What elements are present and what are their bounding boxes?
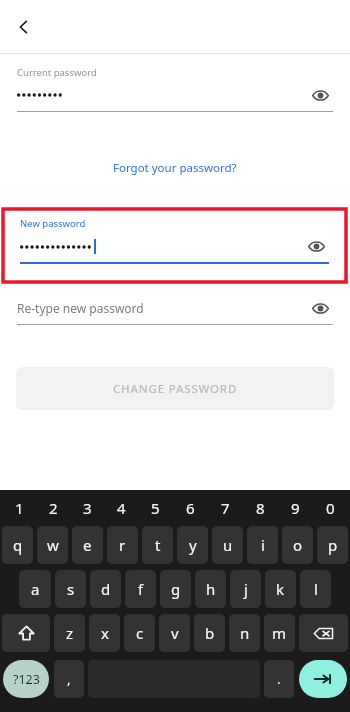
staticText: 1	[15, 498, 24, 518]
button[interactable]: u	[212, 526, 243, 564]
button[interactable]: Show password	[307, 297, 333, 319]
button[interactable]: y	[177, 526, 208, 564]
button[interactable]: c	[124, 614, 155, 652]
button[interactable]: o	[282, 526, 313, 564]
staticText: Current password	[17, 66, 97, 79]
button[interactable]: Show password	[303, 236, 329, 256]
button[interactable]: g	[160, 570, 191, 608]
staticText: 9	[291, 498, 300, 518]
staticText: z	[66, 623, 74, 643]
staticText: c	[136, 623, 144, 643]
button[interactable]: x	[89, 614, 120, 652]
staticText: t	[155, 535, 161, 555]
staticText: d	[101, 579, 111, 599]
button[interactable]: j	[230, 570, 261, 608]
button[interactable]: 3	[70, 493, 104, 523]
staticText: m	[272, 623, 287, 643]
button[interactable]: Back	[6, 9, 42, 45]
button[interactable]: 9	[278, 493, 313, 523]
button[interactable]: v	[159, 614, 190, 652]
button[interactable]: CHANGE PASSWORD	[16, 367, 334, 410]
staticText: k	[276, 579, 285, 599]
staticText: p	[328, 535, 338, 555]
staticText: s	[67, 579, 75, 599]
staticText: b	[205, 623, 215, 643]
button[interactable]: z	[54, 614, 85, 652]
button[interactable]: .	[264, 660, 294, 698]
button[interactable]: a	[19, 570, 51, 608]
staticText: j	[244, 579, 248, 599]
staticText: q	[13, 535, 23, 555]
staticText: l	[314, 579, 318, 599]
button[interactable]: p	[317, 526, 348, 564]
staticText: .	[277, 670, 281, 688]
button[interactable]: Show password	[307, 85, 333, 105]
button[interactable]: q	[2, 526, 33, 564]
staticText: n	[240, 623, 250, 643]
button[interactable]: Backspace	[299, 614, 348, 652]
staticText: h	[206, 579, 216, 599]
staticText: a	[31, 579, 40, 599]
button[interactable]: h	[195, 570, 226, 608]
staticText: g	[171, 579, 181, 599]
button[interactable]: 1	[2, 493, 36, 523]
button[interactable]: Shift	[2, 614, 50, 652]
staticText: Re-type new password	[17, 300, 144, 316]
staticText: e	[83, 535, 92, 555]
button[interactable]: 8	[243, 493, 278, 523]
staticText: i	[261, 535, 265, 555]
button[interactable]: Forgot your password?	[105, 156, 245, 180]
staticText: 8	[256, 498, 265, 518]
staticText: ,	[67, 670, 71, 688]
button[interactable]: Next	[299, 660, 347, 698]
button[interactable]: r	[107, 526, 138, 564]
staticText: u	[223, 535, 233, 555]
button[interactable]: l	[300, 570, 331, 608]
staticText: 7	[221, 498, 230, 518]
button[interactable]: i	[247, 526, 278, 564]
button[interactable]: s	[55, 570, 86, 608]
staticText: Forgot your password?	[113, 160, 237, 176]
staticText: f	[138, 579, 144, 599]
button[interactable]: 7	[208, 493, 243, 523]
staticText: New password	[20, 217, 86, 230]
staticText: 2	[49, 498, 58, 518]
staticText: CHANGE PASSWORD	[113, 381, 238, 397]
staticText: r	[119, 535, 126, 555]
button[interactable]: 4	[104, 493, 138, 523]
button[interactable]: e	[72, 526, 103, 564]
button[interactable]: 5	[138, 493, 173, 523]
staticText: x	[101, 623, 109, 643]
staticText: y	[189, 535, 197, 555]
staticText: o	[293, 535, 303, 555]
button[interactable]: d	[90, 570, 121, 608]
button[interactable]: k	[265, 570, 296, 608]
staticText: 6	[186, 498, 195, 518]
button[interactable]: f	[125, 570, 156, 608]
button[interactable]: 0	[313, 493, 348, 523]
staticText: v	[171, 623, 179, 643]
staticText: 4	[117, 498, 126, 518]
staticText: 0	[326, 498, 335, 518]
button[interactable]: w	[37, 526, 68, 564]
staticText: 3	[83, 498, 92, 518]
button[interactable]: t	[142, 526, 173, 564]
staticText: w	[47, 535, 59, 555]
button[interactable]: b	[194, 614, 225, 652]
button[interactable]: ,	[54, 660, 84, 698]
button[interactable]: m	[264, 614, 295, 652]
button[interactable]: 2	[36, 493, 70, 523]
button[interactable]: n	[229, 614, 260, 652]
staticText: ?123	[13, 671, 40, 688]
staticText: 5	[151, 498, 160, 518]
button[interactable]: ?123	[3, 660, 49, 698]
button[interactable]: 6	[173, 493, 208, 523]
